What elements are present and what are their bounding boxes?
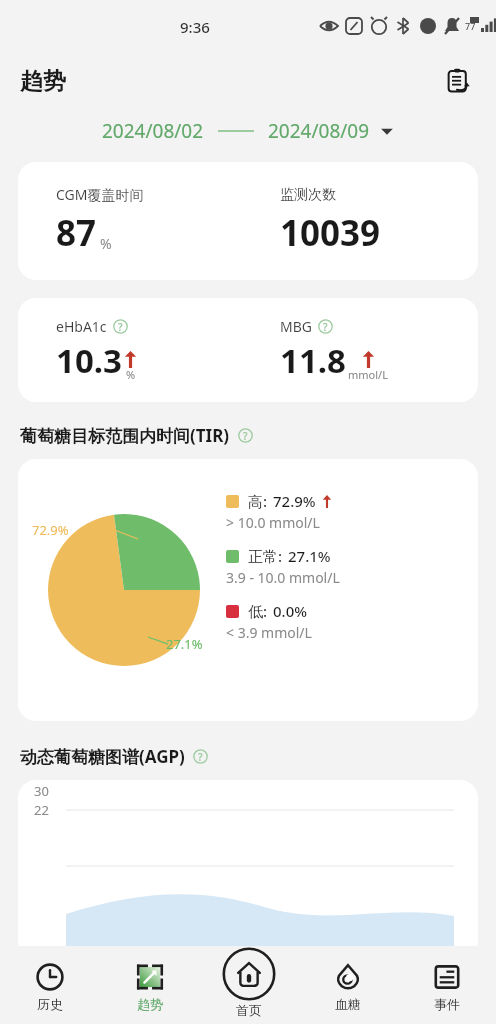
staticText: 77 (465, 20, 476, 32)
staticText: ? (118, 320, 123, 334)
staticText: 3.9 - 10.0 mmol/L (226, 568, 340, 587)
button[interactable]: eHbA1c (18, 298, 478, 402)
staticText: 历史 (37, 996, 63, 1012)
staticText: 27.1% (166, 635, 203, 653)
staticText: 葡萄糖目标范围内时间(TIR) (20, 424, 230, 447)
staticText: 低: (248, 601, 268, 621)
staticText: % (100, 234, 112, 253)
button[interactable]: 事件 (397, 946, 496, 1012)
staticText: 30 (34, 782, 49, 800)
staticText: 首页 (236, 1002, 262, 1018)
staticText: 正常: (248, 546, 283, 566)
button[interactable]: 血糖 (298, 946, 397, 1012)
staticText: 27.1% (288, 546, 331, 566)
staticText: 72.9% (273, 491, 316, 511)
staticText: CGM覆盖时间 (56, 185, 144, 204)
staticText: 2024/08/02 (102, 118, 204, 144)
button[interactable]: 首页 (199, 946, 298, 1018)
staticText: MBG (280, 317, 312, 336)
button[interactable]: Info (193, 749, 208, 764)
staticText: 动态葡萄糖图谱(AGP) (20, 745, 185, 768)
button[interactable]: 趋势 (100, 946, 199, 1012)
button[interactable]: Info (113, 319, 128, 334)
staticText: 10.3 (56, 338, 122, 383)
button[interactable]: Report (436, 59, 480, 103)
staticText: 高: (248, 491, 268, 511)
button[interactable]: 2024/08/02 (0, 110, 496, 152)
staticText: 血糖 (335, 996, 361, 1012)
staticText: 9:36 (180, 17, 210, 37)
staticText: 87 (56, 209, 97, 257)
button[interactable]: Info (318, 319, 333, 334)
staticText: 2024/08/09 (268, 118, 370, 144)
staticText: 22 (34, 801, 49, 819)
staticText: 事件 (434, 996, 460, 1012)
staticText: % (126, 367, 136, 382)
staticText: < 3.9 mmol/L (226, 623, 312, 642)
staticText: ? (323, 320, 328, 334)
staticText: 11.8 (280, 338, 346, 383)
button[interactable]: Info (238, 428, 253, 443)
button[interactable]: 历史 (0, 946, 100, 1012)
staticText: > 10.0 mmol/L (226, 513, 320, 532)
staticText: 10039 (280, 209, 381, 257)
staticText: ? (243, 429, 248, 443)
button[interactable]: CGM覆盖时间 (18, 162, 478, 280)
staticText: 72.9% (32, 521, 69, 539)
staticText: 监测次数 (280, 186, 336, 204)
staticText: mmol/L (348, 367, 388, 382)
staticText: eHbA1c (56, 317, 107, 336)
staticText: ? (198, 750, 203, 764)
staticText: 趋势 (20, 67, 66, 96)
staticText: 趋势 (137, 996, 163, 1012)
staticText: 0.0% (273, 601, 308, 621)
